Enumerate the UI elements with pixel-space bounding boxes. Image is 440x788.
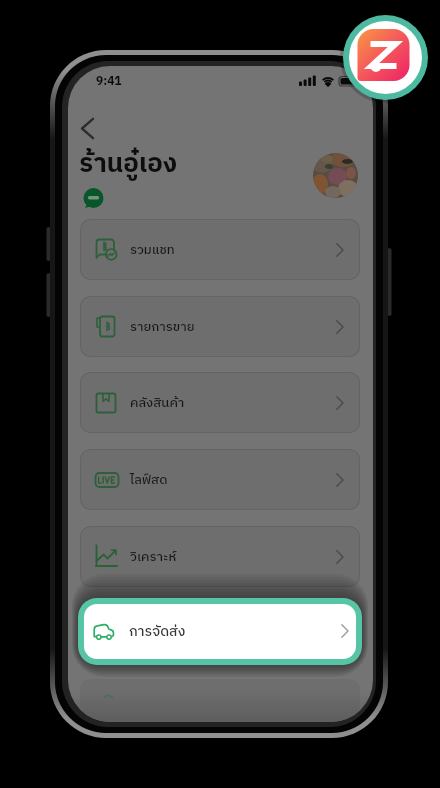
staticText: คลังสินค้า <box>130 392 185 413</box>
button[interactable]: วิเคราะห์ <box>80 526 360 587</box>
button[interactable] <box>74 111 108 145</box>
staticText: วิเคราะห์ <box>130 546 177 567</box>
button[interactable]: คลังสินค้า <box>80 372 360 433</box>
button[interactable]: รายการขาย <box>80 296 360 357</box>
staticText: รายการขาย <box>130 316 195 337</box>
button[interactable]: ไลฟ์สด <box>80 449 360 510</box>
staticText: 9:41 <box>96 72 122 92</box>
staticText: ไลฟ์สด <box>130 469 168 490</box>
staticText: การจัดส่ง <box>129 620 186 643</box>
button[interactable]: การจัดส่ง <box>78 598 362 665</box>
staticText: รวมแชท <box>130 239 175 260</box>
button[interactable]: รวมแชท <box>80 219 360 280</box>
button[interactable] <box>80 679 360 722</box>
staticText: ร้านอู๋เอง <box>79 143 178 186</box>
